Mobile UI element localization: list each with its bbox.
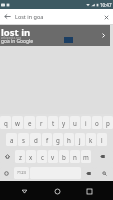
button[interactable]: n	[70, 150, 80, 163]
staticText: j	[79, 136, 81, 144]
staticText: a	[10, 136, 14, 144]
button[interactable]: q	[0, 116, 11, 129]
staticText: goa in Google	[1, 38, 34, 45]
staticText: p	[106, 119, 110, 127]
button[interactable]: lost in	[0, 25, 110, 46]
staticText: lost in	[1, 26, 31, 39]
staticText: k	[89, 136, 93, 144]
staticText: e	[28, 119, 32, 127]
staticText: m	[83, 153, 89, 161]
button[interactable]: d	[30, 133, 41, 146]
staticText: 10:47	[100, 2, 112, 8]
button[interactable]: Navigate up	[0, 9, 15, 24]
button[interactable]: z	[15, 150, 25, 163]
staticText: i	[85, 119, 87, 127]
staticText: n	[73, 153, 77, 161]
button[interactable]: e	[24, 116, 35, 129]
staticText: t	[52, 119, 55, 127]
staticText: v	[51, 153, 55, 161]
staticText: ?123	[17, 170, 27, 176]
staticText: Lost in goa	[15, 13, 44, 20]
staticText: y	[62, 119, 66, 127]
button[interactable]: v	[48, 150, 58, 163]
button[interactable]: t	[48, 116, 58, 129]
button[interactable]: Clear query	[100, 11, 112, 23]
staticText: wikipedia.org	[1, 36, 22, 40]
staticText: x	[29, 153, 33, 161]
staticText: z	[19, 153, 22, 161]
staticText: u	[73, 119, 77, 127]
button[interactable]: x	[26, 150, 36, 163]
staticText: r	[40, 119, 43, 127]
staticText: l	[101, 136, 103, 144]
button[interactable]: b	[59, 150, 69, 163]
button[interactable]: i	[81, 116, 91, 129]
button[interactable]: o	[92, 116, 102, 129]
staticText: f	[46, 136, 49, 144]
staticText: d	[34, 136, 38, 144]
staticText: w	[15, 119, 20, 127]
button[interactable]: f	[42, 133, 52, 146]
staticText: q	[4, 119, 8, 127]
button[interactable]: u	[70, 116, 80, 129]
staticText: h	[67, 136, 71, 144]
button[interactable]: j	[75, 133, 85, 146]
button[interactable]: Open suggestion	[99, 31, 108, 40]
button[interactable]: p	[103, 116, 113, 129]
button[interactable]: m	[81, 150, 91, 163]
button[interactable]: s	[18, 133, 29, 146]
button[interactable]: l	[97, 133, 107, 146]
button[interactable]: a	[6, 133, 17, 146]
button[interactable]: Back	[16, 183, 32, 199]
button[interactable]: w	[12, 116, 23, 129]
button[interactable]: Backspace	[82, 167, 94, 179]
staticText: s	[22, 136, 25, 144]
staticText: c	[41, 153, 44, 161]
button[interactable]: r	[36, 116, 47, 129]
button[interactable]: c	[37, 150, 47, 163]
button[interactable]: ?123	[14, 167, 29, 179]
button[interactable]: Shift	[0, 150, 14, 163]
button[interactable]: k	[86, 133, 96, 146]
button[interactable]: Search	[95, 167, 113, 179]
button[interactable]: Emoji	[0, 167, 13, 179]
button[interactable]: g	[53, 133, 63, 146]
button[interactable]: Delete	[92, 150, 113, 163]
button[interactable]: y	[59, 116, 69, 129]
button[interactable]: Home	[49, 183, 65, 199]
staticText: b	[62, 153, 66, 161]
staticText: o	[95, 119, 99, 127]
button[interactable]: h	[64, 133, 74, 146]
button[interactable]: Recent apps	[81, 183, 97, 199]
staticText: g	[56, 136, 60, 144]
